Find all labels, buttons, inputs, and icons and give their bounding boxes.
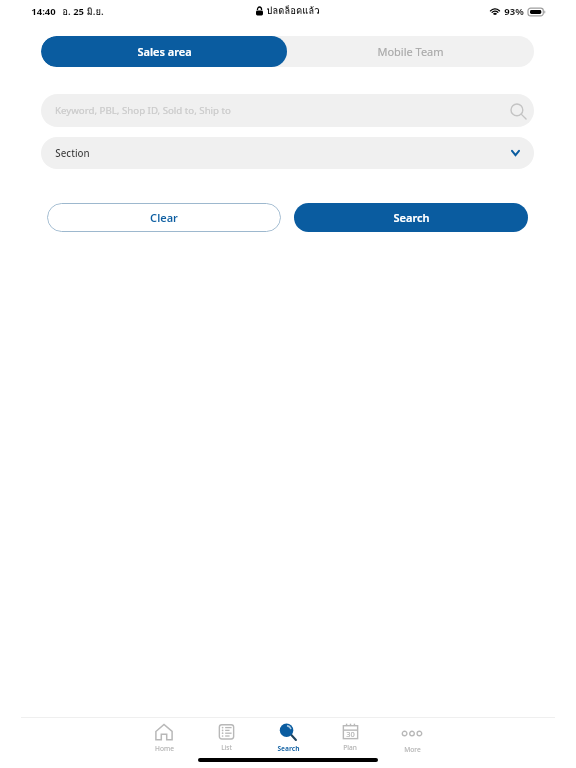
staticText: More xyxy=(404,745,421,754)
button[interactable]: Mobile Team xyxy=(287,36,534,67)
staticText: 30 xyxy=(346,729,355,739)
staticText: Keyword, PBL, Shop ID, Sold to, Ship to xyxy=(55,104,231,117)
staticText: 93% xyxy=(504,5,524,18)
staticText: List xyxy=(221,743,232,752)
button[interactable]: Section xyxy=(41,137,534,169)
button[interactable]: Search xyxy=(257,723,319,759)
staticText: Clear xyxy=(150,210,178,225)
staticText: อ. 25 มิ.ย. xyxy=(62,4,104,19)
button[interactable]: More xyxy=(381,723,443,759)
button[interactable]: Sales area xyxy=(41,36,287,67)
staticText: Home xyxy=(155,744,174,753)
button[interactable]: List xyxy=(195,723,257,759)
button[interactable]: Home xyxy=(133,723,195,759)
staticText: Sales area xyxy=(137,44,192,59)
other: Search xyxy=(511,103,527,119)
staticText: Search xyxy=(277,744,300,753)
staticText: Plan xyxy=(343,743,357,752)
staticText: ปลดล็อคแล้ว xyxy=(266,3,320,18)
button[interactable]: Clear xyxy=(47,203,281,232)
button[interactable]: Keyword, PBL, Shop ID, Sold to, Ship to xyxy=(41,94,534,127)
staticText: Section xyxy=(55,147,90,160)
staticText: 14:40 xyxy=(31,5,56,18)
staticText: Search xyxy=(393,210,430,225)
staticText: Mobile Team xyxy=(377,44,444,59)
button[interactable]: 30 xyxy=(319,723,381,759)
button[interactable]: Search xyxy=(294,203,528,232)
other: Expand section xyxy=(511,150,520,156)
